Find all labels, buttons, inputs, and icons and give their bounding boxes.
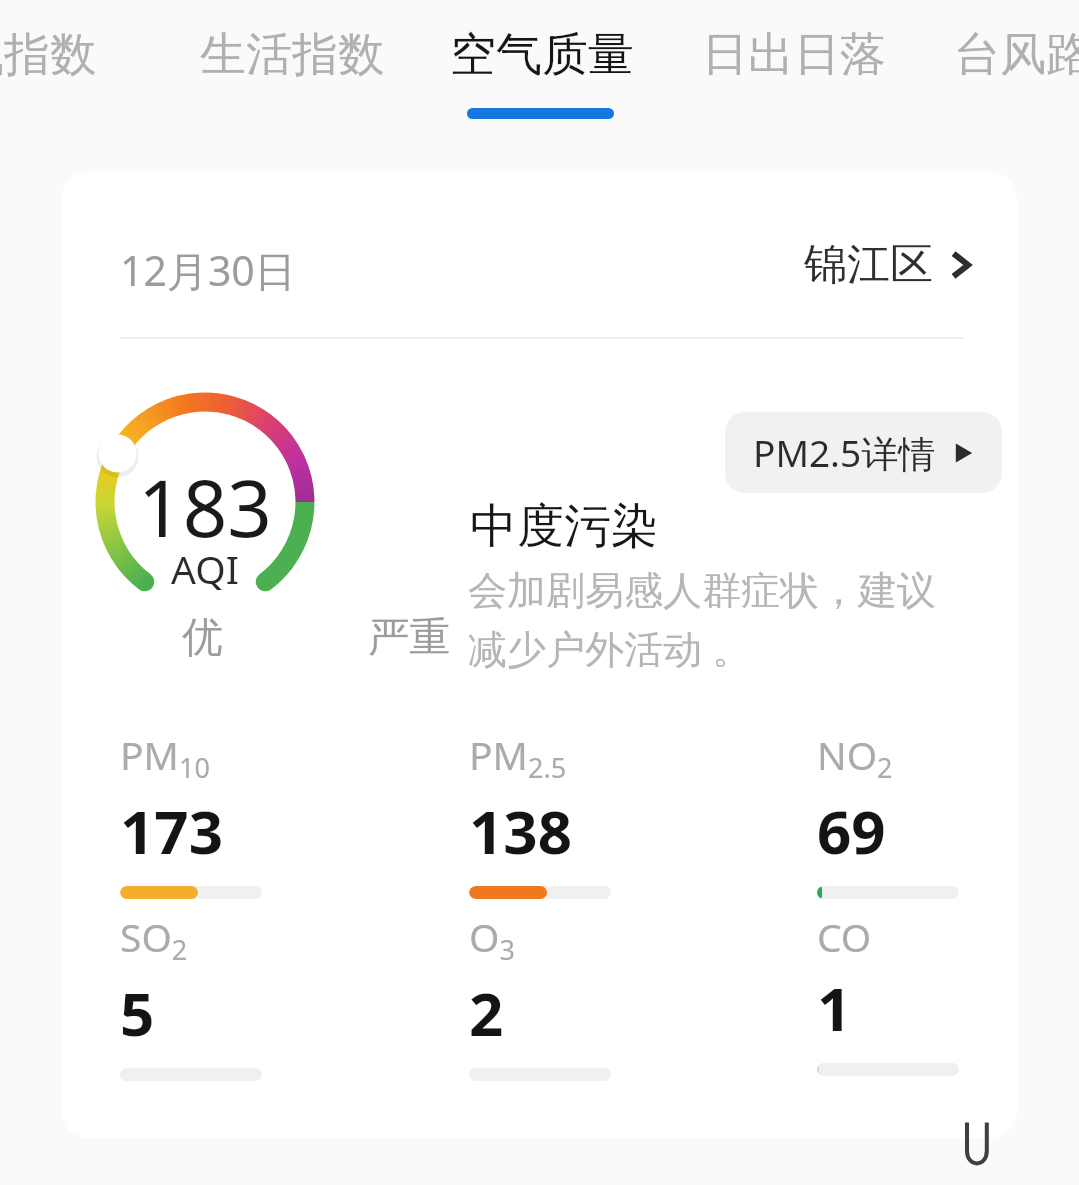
button[interactable]: PM2.5 <box>469 728 699 899</box>
staticText: 138 <box>469 790 572 872</box>
staticText: 优 <box>182 612 223 664</box>
staticText: 5 <box>120 972 155 1054</box>
staticText: PM2.5 <box>469 728 567 786</box>
staticText: 锦江区 <box>804 238 933 292</box>
button[interactable]: NO2 <box>817 728 1017 899</box>
staticText: 生活指数 <box>200 26 384 84</box>
button[interactable]: 空气质量 <box>448 20 636 90</box>
staticText: 173 <box>120 790 223 872</box>
button[interactable]: 12月30日 <box>120 242 296 298</box>
staticText: 日出日落 <box>702 26 886 84</box>
button[interactable]: SO2 <box>120 910 350 1081</box>
staticText: O3 <box>469 910 515 968</box>
staticText: SO2 <box>120 910 188 968</box>
button[interactable]: CO <box>817 910 1017 1076</box>
staticText: AQI <box>171 542 239 595</box>
staticText: 183 <box>138 454 272 560</box>
staticText: 12月30日 <box>120 242 296 298</box>
button[interactable]: 台风路线 <box>952 20 1079 90</box>
staticText: 中度污染 <box>470 497 658 556</box>
button[interactable]: O3 <box>469 910 699 1081</box>
staticText: 空气质量 <box>450 26 634 84</box>
button[interactable]: 生活指数 <box>198 20 386 90</box>
staticText: 会加剧易感人群症状，建议减少户外活动 。 <box>468 566 963 674</box>
staticText: PM10 <box>120 728 210 786</box>
button[interactable]: 气指数 <box>0 20 98 90</box>
staticText: 台风路线 <box>954 26 1079 84</box>
staticText: 气指数 <box>0 26 96 84</box>
button[interactable]: PM10 <box>120 728 350 899</box>
button[interactable]: PM2.5详情 <box>725 412 1002 493</box>
other: AQI 183 中度污染 <box>80 384 440 659</box>
staticText: CO <box>817 910 872 963</box>
staticText: 2 <box>469 972 504 1054</box>
button[interactable]: 锦江区 <box>804 238 977 292</box>
staticText: NO2 <box>817 728 893 786</box>
staticText: 严重 <box>368 612 450 664</box>
staticText: 1 <box>817 967 852 1049</box>
staticText: 69 <box>817 790 886 872</box>
staticText: PM2.5详情 <box>753 427 936 478</box>
button[interactable]: 日出日落 <box>700 20 888 90</box>
